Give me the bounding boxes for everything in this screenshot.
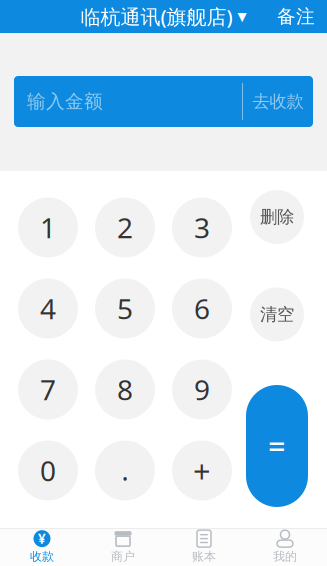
button[interactable]: 2 (95, 197, 155, 257)
button[interactable]: 删除 (250, 190, 304, 244)
staticText: 输入金额 (27, 90, 103, 113)
staticText: ¥ (38, 530, 46, 547)
button[interactable]: 4 (18, 278, 78, 338)
staticText: + (193, 450, 211, 491)
staticText: 2 (117, 209, 133, 246)
button[interactable]: 3 (172, 197, 232, 257)
staticText: 收款 (30, 549, 54, 564)
staticText: 清空 (260, 304, 294, 325)
staticText: 去收款 (252, 91, 303, 112)
staticText: 临杭通讯(旗舰店) (80, 3, 232, 30)
staticText: 商户 (111, 549, 135, 564)
button[interactable]: 临杭通讯(旗舰店) (80, 3, 246, 30)
button[interactable]: 账本 (163, 528, 244, 566)
staticText: 3 (194, 209, 210, 246)
staticText: . (121, 453, 128, 488)
button[interactable]: = (246, 385, 308, 507)
staticText: 0 (40, 452, 56, 489)
staticText: 删除 (260, 206, 294, 228)
button[interactable]: + (172, 440, 232, 500)
staticText: 7 (40, 371, 56, 408)
button[interactable]: 5 (95, 278, 155, 338)
button[interactable]: . (95, 440, 155, 500)
button[interactable]: 备注 (265, 0, 327, 33)
button[interactable]: 我的 (244, 528, 325, 566)
staticText: 备注 (277, 5, 315, 28)
staticText: 5 (117, 290, 133, 327)
staticText: 8 (117, 371, 133, 408)
button[interactable]: 去收款 (243, 76, 313, 127)
button[interactable]: 0 (18, 440, 78, 500)
button[interactable]: 7 (18, 359, 78, 419)
staticText: 我的 (273, 549, 297, 564)
button[interactable]: 商户 (82, 528, 163, 566)
button[interactable]: 8 (95, 359, 155, 419)
button[interactable]: 1 (18, 197, 78, 257)
button[interactable]: 输入金额 (14, 76, 242, 127)
staticText: ▼ (237, 10, 246, 23)
button[interactable]: 9 (172, 359, 232, 419)
staticText: 6 (194, 290, 210, 327)
staticText: 账本 (192, 549, 216, 564)
staticText: 1 (40, 209, 56, 246)
button[interactable]: 6 (172, 278, 232, 338)
button[interactable]: ¥ (1, 528, 82, 566)
staticText: 9 (194, 371, 210, 408)
button[interactable]: 清空 (250, 287, 304, 341)
staticText: = (268, 426, 286, 466)
staticText: 4 (40, 290, 56, 327)
